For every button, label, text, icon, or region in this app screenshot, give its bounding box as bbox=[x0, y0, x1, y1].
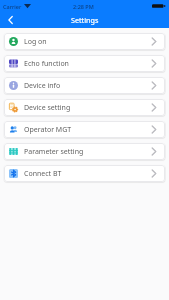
staticText: Carrier bbox=[3, 3, 22, 10]
button[interactable]: Log on bbox=[4, 33, 165, 50]
staticText: Echo function bbox=[24, 59, 69, 69]
button[interactable]: Connect BT bbox=[4, 165, 165, 182]
staticText: Settings bbox=[71, 15, 99, 25]
staticText: Device setting bbox=[24, 103, 71, 113]
button[interactable]: Parameter setting bbox=[4, 143, 165, 160]
button[interactable]: Back bbox=[0, 12, 20, 28]
staticText: 2:28 PM bbox=[73, 3, 94, 10]
staticText: Device info bbox=[24, 81, 61, 91]
staticText: Connect BT bbox=[24, 169, 62, 179]
button[interactable]: Echo function bbox=[4, 55, 165, 72]
button[interactable]: Device setting bbox=[4, 99, 165, 116]
staticText: Log on bbox=[24, 37, 47, 47]
button[interactable]: Device info bbox=[4, 77, 165, 94]
staticText: Operator MGT bbox=[24, 125, 72, 135]
button[interactable]: Operator MGT bbox=[4, 121, 165, 138]
staticText: Parameter setting bbox=[24, 147, 84, 157]
